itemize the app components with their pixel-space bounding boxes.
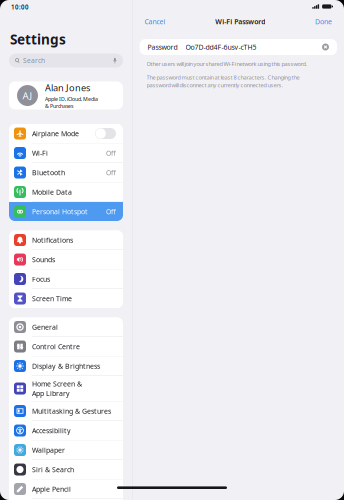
staticText: Notifications xyxy=(32,235,73,245)
staticText: Apple ID, iCloud, Media xyxy=(45,95,98,103)
staticText: Display & Brightness xyxy=(32,361,100,371)
button[interactable]: Multitasking & Gestures xyxy=(9,401,123,420)
staticText: The password must contain at least 8 cha… xyxy=(147,74,300,89)
staticText: Done xyxy=(315,17,332,26)
staticText: Accessibility xyxy=(32,426,71,435)
button[interactable]: Accessibility xyxy=(9,421,123,440)
staticText: & Purchases xyxy=(45,102,73,110)
button[interactable]: Wi-Fi xyxy=(9,143,123,162)
button[interactable]: Airplane Mode xyxy=(9,124,123,143)
staticText: Password xyxy=(148,42,178,52)
staticText: AJ xyxy=(22,89,32,102)
staticText: Off xyxy=(106,168,116,177)
button[interactable]: Display & Brightness xyxy=(9,356,123,375)
staticText: Alan Jones xyxy=(45,81,90,94)
staticText: Home Screen & App Library xyxy=(32,379,82,398)
staticText: Personal Hotspot xyxy=(32,207,88,216)
staticText: Cancel xyxy=(145,17,166,26)
staticText: Settings xyxy=(10,30,66,48)
staticText: Off xyxy=(106,148,116,158)
button[interactable]: AJ xyxy=(9,81,123,109)
button[interactable]: Wallpaper xyxy=(9,440,123,459)
button[interactable]: Bluetooth xyxy=(9,163,123,182)
staticText: Focus xyxy=(32,274,50,284)
staticText: Sounds xyxy=(32,255,55,264)
button[interactable]: Done xyxy=(312,15,335,28)
staticText: Apple Pencil xyxy=(32,484,71,494)
button[interactable]: Cancel xyxy=(142,15,169,28)
button[interactable]: General xyxy=(9,317,123,336)
staticText: Other users will join your shared Wi-Fi … xyxy=(147,60,308,68)
button[interactable]: Siri & Search xyxy=(9,460,123,479)
staticText: General xyxy=(32,322,58,332)
staticText: Bluetooth xyxy=(32,168,65,177)
staticText: Siri & Search xyxy=(32,465,74,474)
staticText: Search xyxy=(23,56,45,65)
staticText: Multitasking & Gestures xyxy=(32,406,111,416)
staticText: Wi-Fi Password xyxy=(215,17,265,26)
staticText: Off xyxy=(106,207,116,216)
button[interactable]: Home Screen & App Library xyxy=(9,376,123,401)
button[interactable]: Clear text xyxy=(322,43,329,50)
staticText: Wi-Fi xyxy=(32,148,48,158)
button[interactable]: Focus xyxy=(9,269,123,288)
button[interactable]: Sounds xyxy=(9,250,123,269)
staticText: Oo7D-dd4F-6usv-cTH5 xyxy=(186,42,257,52)
staticText: Screen Time xyxy=(32,294,72,303)
staticText: Control Centre xyxy=(32,342,80,351)
button[interactable]: Mobile Data xyxy=(9,182,123,201)
button[interactable]: Screen Time xyxy=(9,289,123,308)
staticText: Wallpaper xyxy=(32,445,65,455)
staticText: 10:00 xyxy=(11,3,29,11)
staticText: Mobile Data xyxy=(32,187,72,197)
button[interactable]: Control Centre xyxy=(9,337,123,356)
button[interactable]: Personal Hotspot xyxy=(9,202,123,221)
button[interactable]: Notifications xyxy=(9,230,123,249)
staticText: Airplane Mode xyxy=(32,129,79,138)
button[interactable]: Apple Pencil xyxy=(9,479,123,498)
